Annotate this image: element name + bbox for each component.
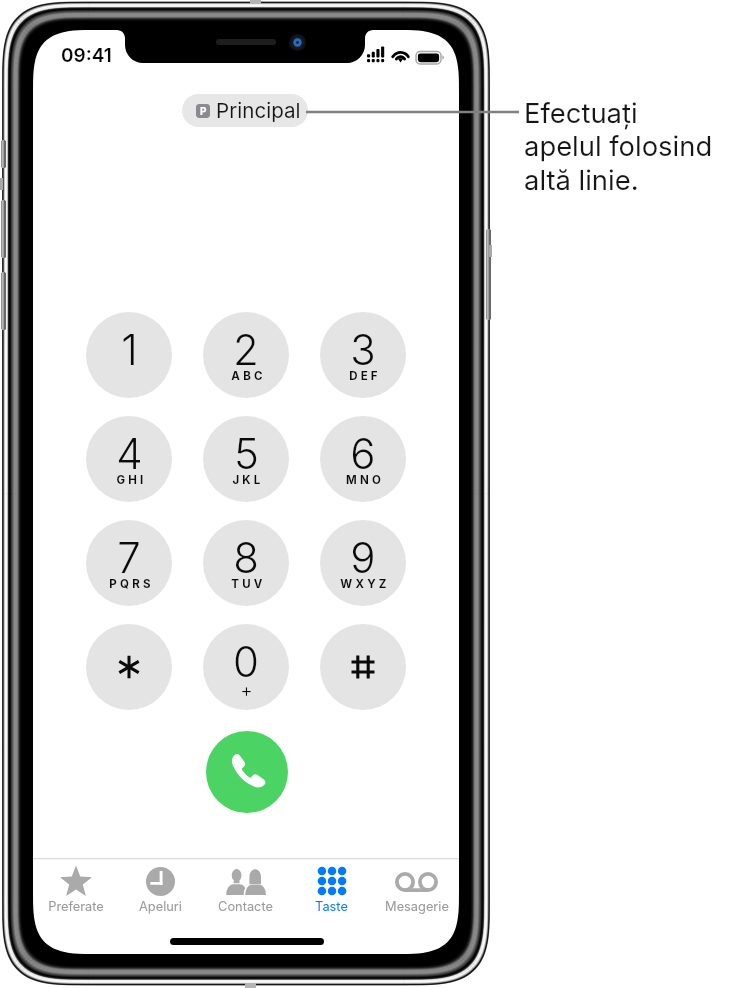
staticText: TUV (231, 577, 266, 591)
button[interactable]: 3 (320, 312, 406, 398)
staticText: JKL (232, 473, 264, 487)
staticText: 2 (233, 324, 259, 375)
button[interactable]: 6 (320, 416, 406, 502)
button[interactable] (320, 624, 406, 710)
staticText: Contacte (218, 899, 273, 914)
staticText: MNO (346, 473, 384, 487)
staticText: 8 (233, 532, 259, 583)
staticText: Apeluri (139, 899, 182, 914)
staticText: 6 (350, 428, 376, 479)
staticText: 3 (350, 324, 376, 375)
button[interactable]: Apeluri (118, 860, 203, 925)
button[interactable] (86, 624, 172, 710)
staticText: 9 (350, 532, 376, 583)
staticText: GHI (116, 473, 147, 487)
button[interactable]: Contacte (203, 860, 288, 925)
button[interactable]: Taste (289, 860, 374, 925)
staticText: PQRS (109, 577, 154, 591)
staticText: P (200, 105, 207, 117)
button[interactable]: 0 (203, 624, 289, 710)
button[interactable]: Mesagerie (374, 860, 459, 925)
button[interactable]: 8 (203, 520, 289, 606)
staticText: Efectuați apelul folosind altă linie. (524, 96, 713, 197)
staticText: + (240, 679, 253, 702)
button[interactable]: 9 (320, 520, 406, 606)
staticText: WXYZ (340, 577, 390, 591)
staticText: 09:41 (61, 44, 112, 67)
button[interactable]: 7 (86, 520, 172, 606)
button[interactable]: Call (206, 731, 288, 813)
staticText: 4 (116, 428, 143, 479)
staticText: Principal (216, 98, 301, 123)
button[interactable]: 4 (86, 416, 172, 502)
staticText: ABC (231, 369, 266, 383)
button[interactable]: P (182, 94, 308, 127)
staticText: Preferate (48, 899, 104, 914)
button[interactable]: 5 (203, 416, 289, 502)
button[interactable]: 1 (86, 312, 172, 398)
staticText: 5 (234, 428, 259, 479)
staticText: Taste (315, 899, 348, 914)
staticText: DEF (349, 369, 381, 383)
staticText: 7 (117, 532, 141, 583)
staticText: Mesagerie (385, 899, 449, 914)
button[interactable]: 2 (203, 312, 289, 398)
button[interactable]: Preferate (33, 860, 118, 925)
staticText: 1 (121, 324, 138, 375)
staticText: 0 (233, 636, 259, 687)
